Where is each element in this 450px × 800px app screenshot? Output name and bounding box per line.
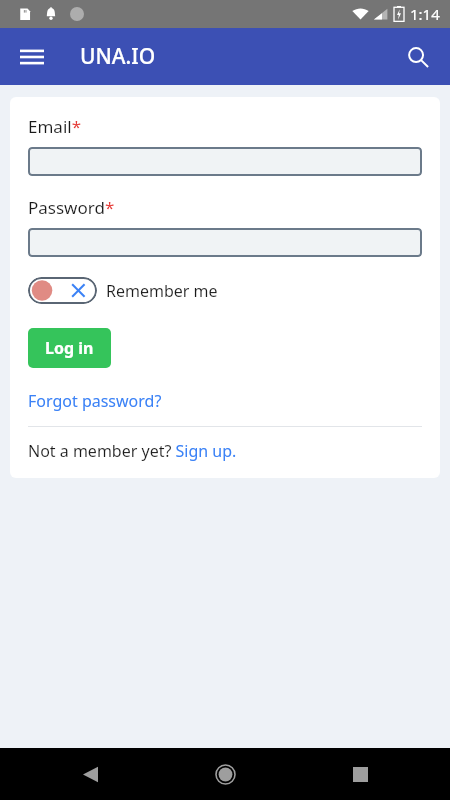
staticText: Not a member yet? Sign up. bbox=[28, 440, 237, 462]
button[interactable]: Log in bbox=[28, 328, 111, 368]
staticText: Password* bbox=[28, 196, 115, 219]
button[interactable]: Remember me toggle bbox=[28, 277, 218, 304]
button[interactable]: Home bbox=[201, 750, 249, 798]
button[interactable]: Forgot password? bbox=[28, 390, 162, 412]
button[interactable]: Remember me toggle bbox=[28, 277, 97, 304]
staticText: Remember me bbox=[106, 280, 218, 302]
staticText: UNA.IO bbox=[80, 42, 156, 71]
button[interactable] bbox=[28, 147, 422, 176]
button[interactable]: Back bbox=[66, 750, 114, 798]
staticText: Log in bbox=[45, 337, 94, 359]
staticText: Email* bbox=[28, 115, 82, 138]
button[interactable]: Not a member yet? Sign up. bbox=[28, 440, 237, 462]
button[interactable]: Menu bbox=[8, 33, 56, 81]
button[interactable] bbox=[28, 228, 422, 257]
button[interactable]: Search bbox=[394, 33, 442, 81]
button[interactable]: Recent apps bbox=[336, 750, 384, 798]
staticText: 1:14 bbox=[410, 4, 440, 24]
